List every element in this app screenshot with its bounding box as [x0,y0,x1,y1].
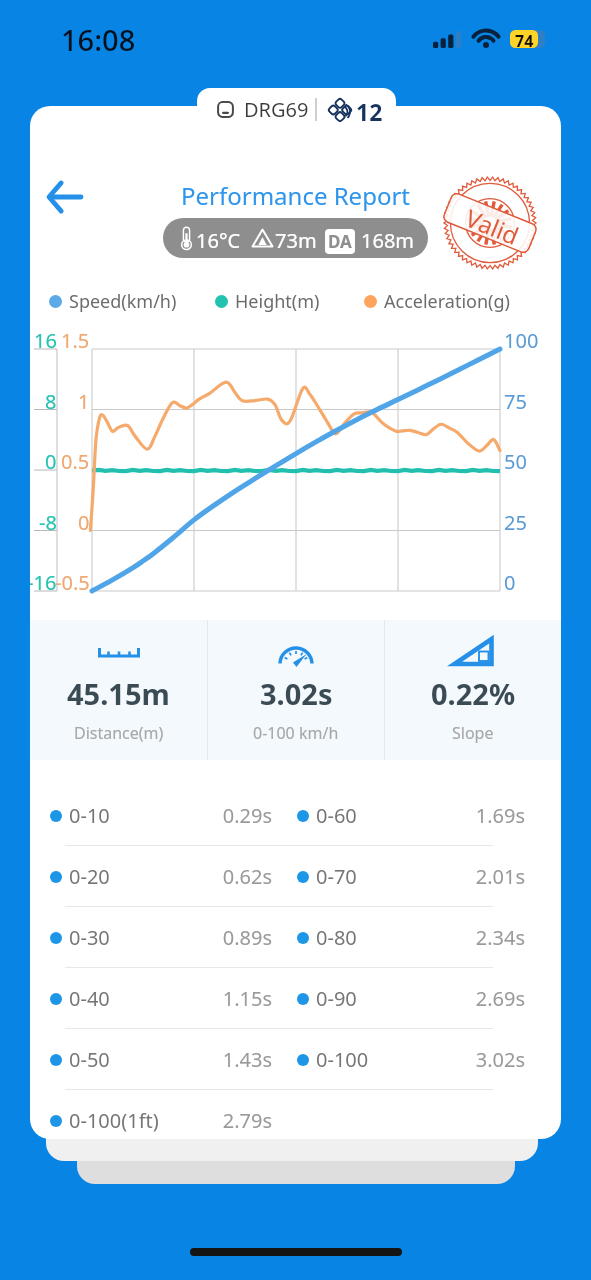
staticText: Distance(m) [74,722,164,744]
staticText: 0-100(1ft) [69,1107,159,1134]
staticText: Acceleration(g) [384,289,510,313]
staticText: 1.69s [458,802,525,829]
staticText: 0-30 [69,924,110,951]
staticText: 0-80 [316,924,357,951]
staticText: 1.43s [210,1046,272,1073]
button[interactable]: 16°C [163,218,428,258]
button[interactable]: 3.02s [208,620,384,760]
staticText: DA [328,230,352,253]
staticText: Performance Report [181,179,411,212]
staticText: 12 [356,96,383,127]
staticText: 3.02s [260,674,333,713]
staticText: 2.69s [458,985,525,1012]
button[interactable]: 0-100(1ft) [30,1090,561,1139]
staticText: 2.34s [458,924,525,951]
staticText: Valid [461,201,524,252]
staticText: 0-60 [316,802,357,829]
button[interactable]: 0-40 [30,968,561,1029]
staticText: 16:08 [61,20,136,59]
staticText: 0.29s [210,802,272,829]
staticText: 0-90 [316,985,357,1012]
staticText: 0-20 [69,863,110,890]
staticText: 45.15m [67,674,170,713]
staticText: 74 [515,30,534,48]
staticText: DRG69 [244,96,309,123]
staticText: 73m [275,227,317,254]
staticText: Height(m) [235,289,320,313]
button[interactable]: 0-50 [30,1029,561,1090]
button[interactable]: 0.22% [385,620,561,760]
button[interactable]: 45.15m [30,620,207,760]
staticText: 0.22% [431,674,516,713]
staticText: 0.62s [210,863,272,890]
staticText: 0-70 [316,863,357,890]
staticText: 0-10 [69,802,110,829]
button[interactable]: Back [38,172,92,222]
button[interactable]: 0-30 [30,907,561,968]
staticText: 2.79s [210,1107,272,1134]
staticText: 0-50 [69,1046,110,1073]
staticText: 0-100 [316,1046,369,1073]
staticText: 0-100 km/h [253,722,339,744]
staticText: 1.15s [210,985,272,1012]
staticText: Slope [452,722,494,744]
staticText: 168m [361,227,415,254]
staticText: 16°C [196,227,241,254]
staticText: 2.01s [458,863,525,890]
staticText: 0.89s [210,924,272,951]
button[interactable]: 0-10 [30,785,561,846]
staticText: Speed(km/h) [69,289,177,313]
button[interactable]: Device DRG69 [197,88,396,131]
staticText: 0-40 [69,985,110,1012]
button[interactable]: 0-20 [30,846,561,907]
staticText: 3.02s [458,1046,525,1073]
